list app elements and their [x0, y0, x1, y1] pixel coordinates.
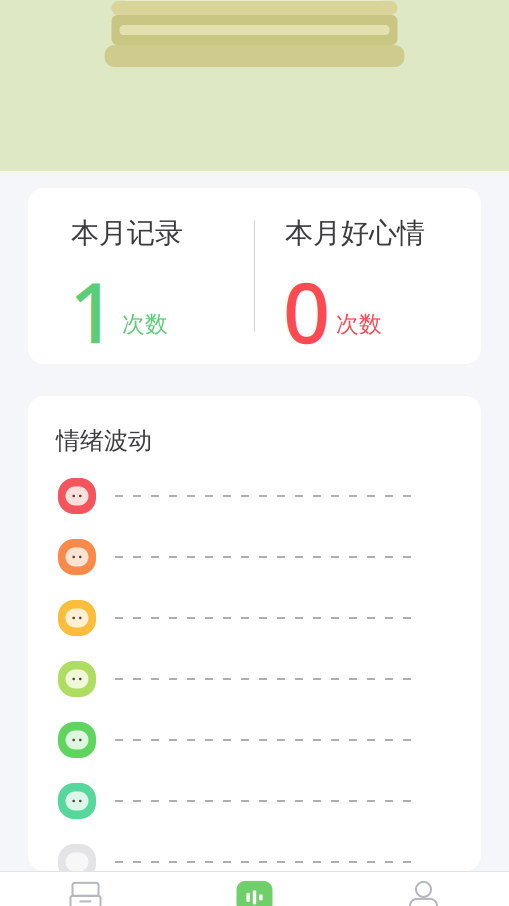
- staticText: 次数: [336, 310, 382, 338]
- button[interactable]: 我的: [339, 872, 508, 906]
- staticText: 0: [283, 256, 330, 366]
- staticText: 次数: [122, 310, 168, 338]
- staticText: 本月好心情: [285, 216, 425, 250]
- staticText: 1: [69, 256, 116, 366]
- button[interactable]: 首页: [1, 872, 170, 906]
- button[interactable]: 统计: [170, 872, 339, 906]
- staticText: 情绪波动: [56, 426, 152, 455]
- staticText: 本月记录: [71, 216, 183, 250]
